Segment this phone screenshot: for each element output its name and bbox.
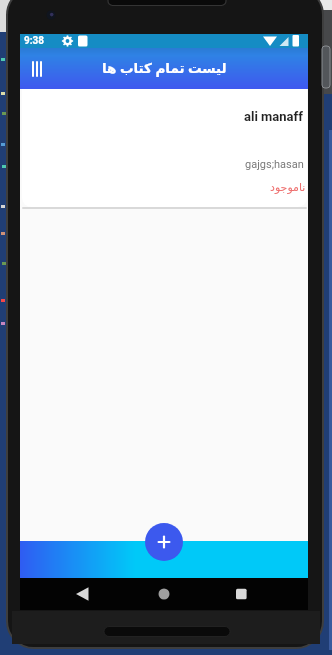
staticText: 9:38: [24, 35, 45, 47]
button[interactable]: ali manaff: [22, 89, 307, 207]
staticText: ali manaff: [244, 109, 303, 124]
button[interactable]: [145, 523, 183, 561]
staticText: gajgs;hasan: [245, 158, 304, 171]
staticText: لیست تمام کتاب ها: [102, 59, 227, 77]
button[interactable]: لیست تمام کتاب ها: [20, 48, 308, 89]
staticText: ناموجود: [270, 181, 306, 194]
button[interactable]: [153, 583, 175, 605]
button[interactable]: [67, 583, 89, 605]
button[interactable]: [230, 583, 252, 605]
